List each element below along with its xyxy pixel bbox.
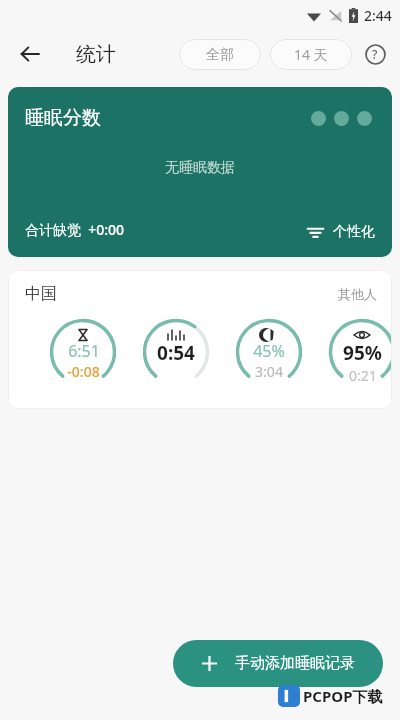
staticText: 6:51 xyxy=(68,340,100,362)
button[interactable]: 睡眠分数 xyxy=(8,87,392,257)
staticText: PCPOP下载 xyxy=(303,686,383,706)
button[interactable]: More options xyxy=(309,109,374,128)
button[interactable]: Back xyxy=(10,34,50,74)
button[interactable]: 中国 xyxy=(8,270,392,409)
button[interactable]: 其他人 xyxy=(338,286,377,302)
staticText: 中国 xyxy=(25,284,57,304)
staticText: ? xyxy=(372,46,378,62)
staticText: 0:21 xyxy=(349,366,377,385)
button[interactable]: Help xyxy=(358,37,392,71)
staticText: 无睡眠数据 xyxy=(165,159,235,177)
button[interactable]: 14 天 xyxy=(270,39,352,70)
staticText: 2:44 xyxy=(364,6,392,25)
staticText: 睡眠分数 xyxy=(25,106,101,130)
staticText: 全部 xyxy=(206,46,234,64)
staticText: 统计 xyxy=(76,42,116,67)
staticText: 14 天 xyxy=(294,45,328,64)
staticText: 手动添加睡眠记录 xyxy=(235,654,355,673)
staticText: 0:54 xyxy=(157,340,195,366)
button[interactable]: 手动添加睡眠记录 xyxy=(173,640,383,687)
staticText: 合计缺觉 +0:00 xyxy=(25,220,125,239)
staticText: -0:08 xyxy=(67,362,100,381)
button[interactable]: 全部 xyxy=(179,39,261,70)
staticText: 95% xyxy=(343,340,382,366)
button[interactable]: 个性化 xyxy=(304,220,378,244)
staticText: 个性化 xyxy=(333,223,375,241)
staticText: 45% xyxy=(253,340,285,362)
staticText: 3:04 xyxy=(255,362,283,381)
